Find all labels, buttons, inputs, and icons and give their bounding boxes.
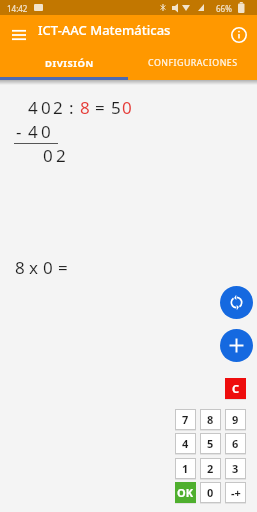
staticText: 2 xyxy=(207,461,214,476)
staticText: 0 xyxy=(43,256,53,279)
button[interactable] xyxy=(220,329,253,362)
staticText: 0 xyxy=(207,485,214,500)
button[interactable] xyxy=(220,286,253,319)
button[interactable]: C xyxy=(225,378,246,399)
staticText: : xyxy=(69,96,74,119)
staticText: 2 xyxy=(53,96,63,119)
staticText: 2 xyxy=(56,144,66,167)
staticText: 0 xyxy=(41,96,51,119)
staticText: x xyxy=(29,256,38,279)
staticText: 0 xyxy=(43,144,53,167)
staticText: 0 xyxy=(122,96,132,119)
button[interactable]: 3 xyxy=(225,458,246,479)
staticText: 8 xyxy=(80,96,90,119)
button[interactable]: 0 xyxy=(200,482,221,503)
button[interactable]: DIVISIÓN xyxy=(0,46,128,80)
staticText: = xyxy=(95,96,105,119)
button[interactable]: OK xyxy=(175,482,196,503)
staticText: 4 xyxy=(28,96,38,119)
staticText: 7 xyxy=(182,412,189,427)
staticText: ICT-AAC Matemáticas xyxy=(38,21,171,39)
button[interactable] xyxy=(227,23,250,46)
staticText: 3 xyxy=(232,461,239,476)
staticText: 66% xyxy=(216,3,232,14)
button[interactable]: 1 xyxy=(175,458,196,479)
staticText: 5 xyxy=(111,96,121,119)
button[interactable]: -+ xyxy=(225,482,246,503)
staticText: 0 xyxy=(41,120,51,143)
button[interactable]: 2 xyxy=(200,458,221,479)
staticText: 4 xyxy=(182,436,189,451)
staticText: 8 xyxy=(15,256,25,279)
button[interactable]: 4 xyxy=(175,433,196,454)
staticText: 9 xyxy=(232,412,239,427)
staticText: CONFIGURACIONES xyxy=(148,57,238,69)
button[interactable]: 6 xyxy=(225,433,246,454)
button[interactable] xyxy=(6,24,32,46)
staticText: = xyxy=(58,256,68,279)
staticText: 5 xyxy=(207,436,214,451)
button[interactable]: 7 xyxy=(175,409,196,430)
button[interactable]: 5 xyxy=(200,433,221,454)
staticText: -+ xyxy=(231,485,241,500)
staticText: 1 xyxy=(182,461,189,476)
staticText: OK xyxy=(177,485,194,500)
staticText: 8 xyxy=(207,412,214,427)
staticText: 4 xyxy=(28,120,38,143)
button[interactable]: 9 xyxy=(225,409,246,430)
staticText: DIVISIÓN xyxy=(45,57,94,70)
staticText: C xyxy=(232,381,240,396)
button[interactable]: CONFIGURACIONES xyxy=(128,46,257,80)
button[interactable]: 8 xyxy=(200,409,221,430)
staticText: 14:42 xyxy=(7,3,28,14)
staticText: 6 xyxy=(232,436,239,451)
staticText: - xyxy=(16,120,22,143)
